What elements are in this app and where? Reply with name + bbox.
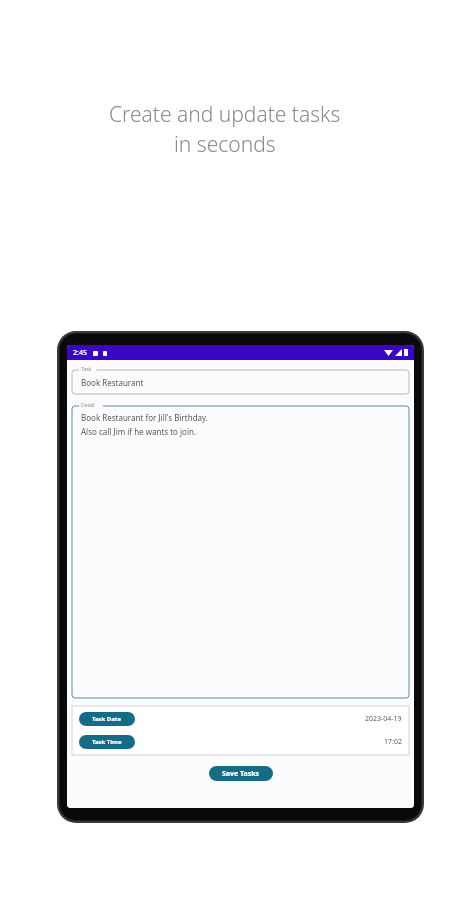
other: Notification <box>93 351 98 356</box>
staticText: Save Tasks <box>222 769 260 779</box>
staticText: in seconds <box>174 130 276 159</box>
other: Signal strength <box>395 349 402 356</box>
button[interactable]: Detail <box>72 401 409 698</box>
other: Notification <box>103 351 107 356</box>
button[interactable]: Task Date <box>79 712 135 726</box>
other: Wi-Fi <box>384 349 393 356</box>
button[interactable]: Task <box>72 365 409 394</box>
staticText: Create and update tasks <box>109 100 341 129</box>
button[interactable]: Task Time <box>79 735 135 749</box>
staticText: 2023-04-19 <box>365 714 402 724</box>
staticText: Book Restaurant <box>81 377 144 388</box>
staticText: Task Date <box>92 715 122 723</box>
staticText: Task <box>81 366 92 373</box>
staticText: Detail <box>81 402 95 409</box>
staticText: 2:45 <box>73 348 87 358</box>
staticText: 17:02 <box>384 737 402 747</box>
staticText: Also call Jim if he wants to join. <box>81 426 197 437</box>
staticText: Task Time <box>92 738 122 746</box>
button[interactable]: Save Tasks <box>209 766 273 781</box>
staticText: Book Restaurant for Jill's Birthday. <box>81 412 208 423</box>
